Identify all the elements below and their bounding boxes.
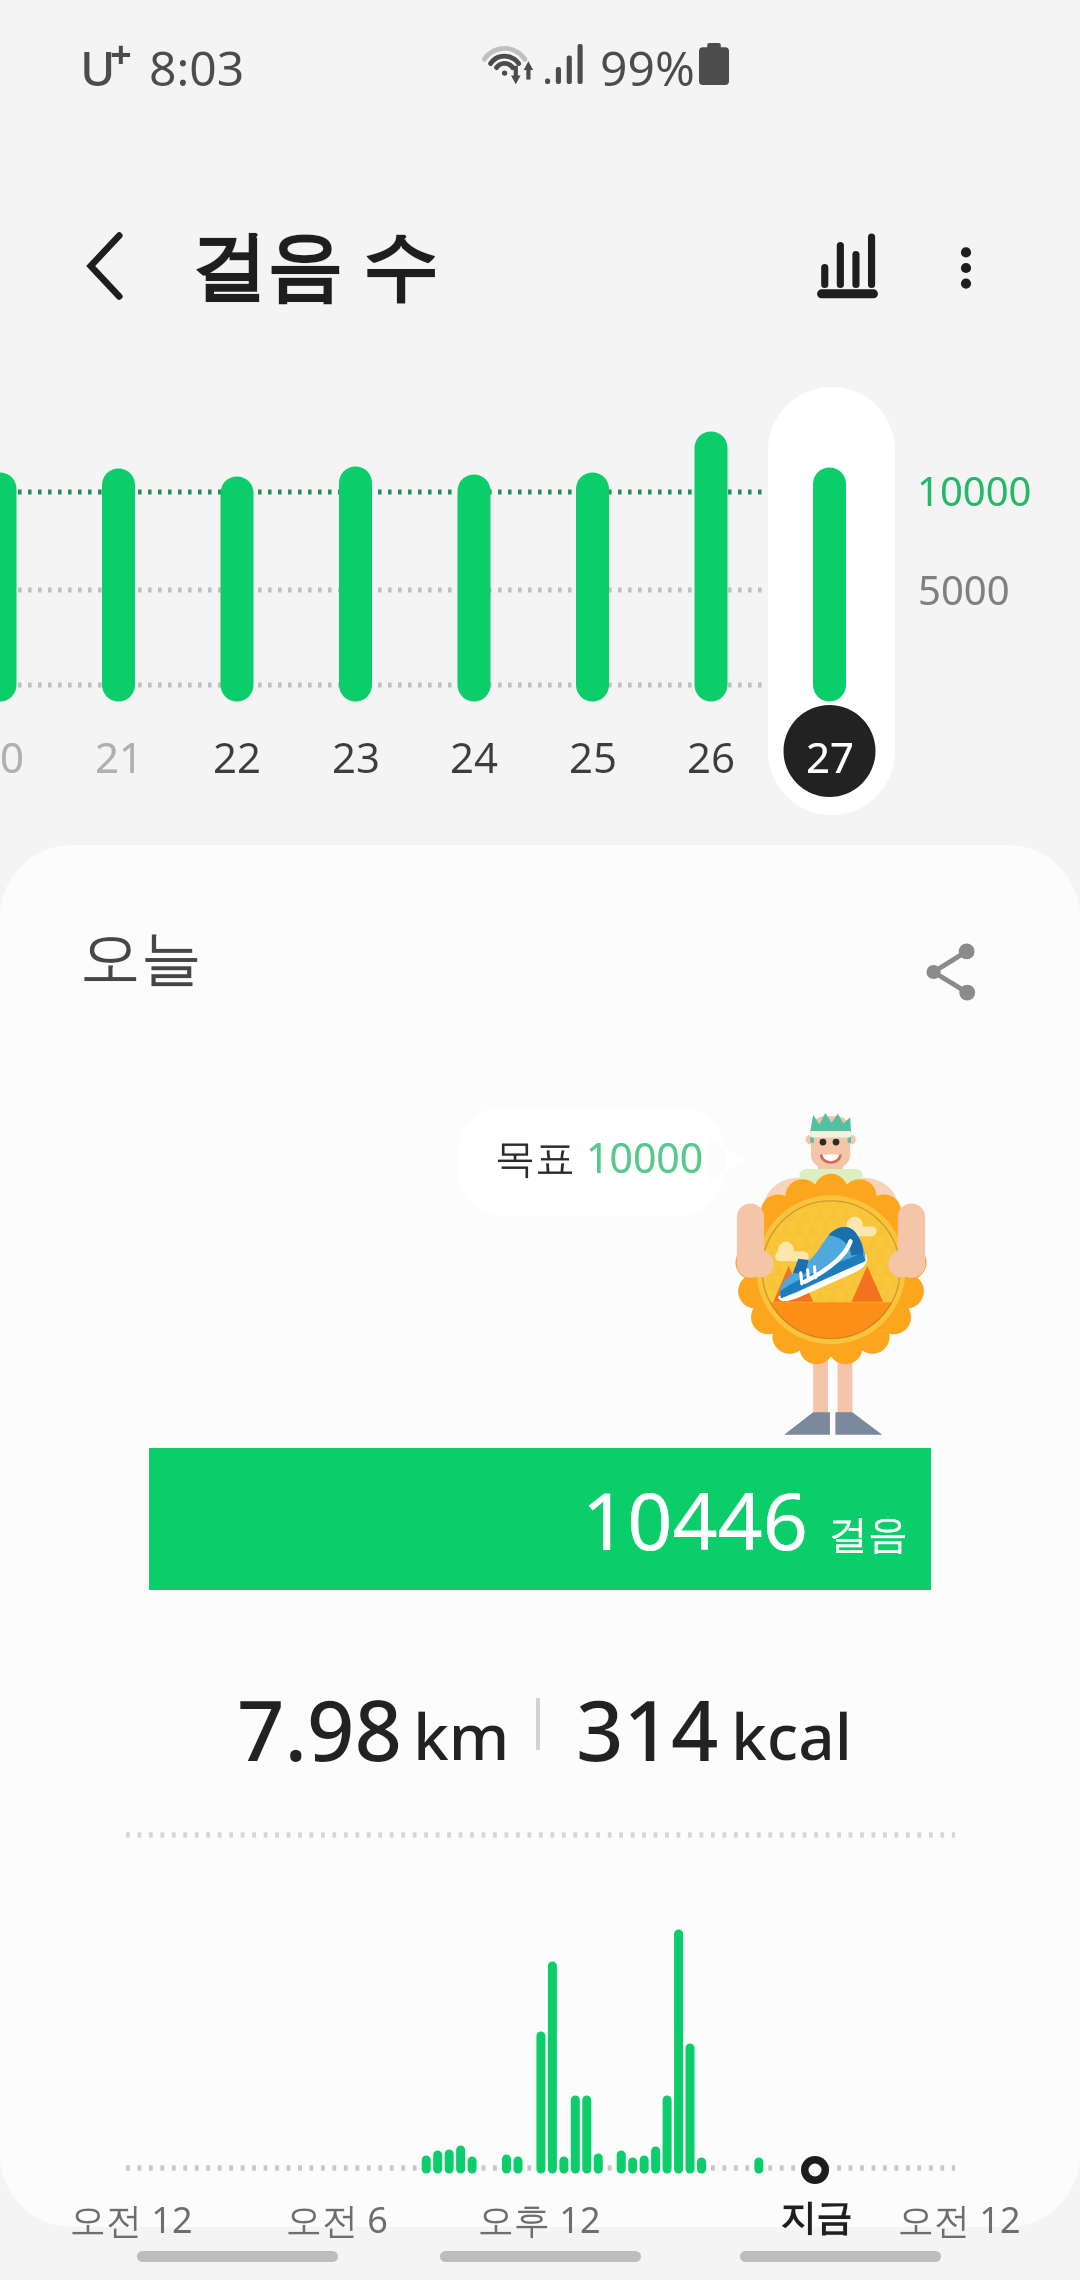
staticText: kcal bbox=[731, 1692, 853, 1779]
staticText: 오전 6 bbox=[286, 2195, 388, 2244]
staticText: 걸음 수 bbox=[190, 212, 438, 316]
button[interactable]: 24 bbox=[416, 390, 532, 790]
staticText: 오후 12 bbox=[478, 2195, 601, 2244]
staticText: 25 bbox=[569, 728, 618, 785]
button[interactable]: 20 bbox=[0, 390, 58, 790]
staticText: 21 bbox=[95, 728, 144, 785]
staticText: 오전 12 bbox=[70, 2195, 193, 2244]
staticText: 314 bbox=[576, 1672, 719, 1785]
staticText: 8:03 bbox=[149, 35, 245, 100]
button[interactable]: Navigation bbox=[137, 2251, 338, 2262]
button[interactable]: 27 bbox=[767, 387, 894, 815]
button[interactable]: Share bbox=[893, 912, 1013, 1032]
button[interactable]: 22 bbox=[179, 390, 295, 790]
staticText: 27 bbox=[806, 728, 855, 785]
staticText: 10000 bbox=[917, 463, 1032, 517]
button[interactable]: Back bbox=[51, 212, 159, 320]
staticText: 지금 bbox=[780, 2195, 852, 2240]
staticText: 22 bbox=[213, 728, 262, 785]
staticText: + bbox=[110, 27, 132, 79]
staticText: 10446 bbox=[582, 1466, 808, 1574]
button[interactable]: 26 bbox=[653, 390, 769, 790]
staticText: 10000 bbox=[586, 1129, 704, 1185]
staticText: U bbox=[80, 35, 116, 100]
button[interactable]: 10446 bbox=[149, 1448, 931, 1590]
button[interactable]: Navigation bbox=[740, 2251, 941, 2262]
button[interactable]: 21 bbox=[61, 390, 177, 790]
staticText: km bbox=[413, 1692, 510, 1779]
button[interactable]: Hourly step chart bbox=[110, 1825, 966, 2180]
staticText: 목표 bbox=[495, 1129, 586, 1184]
staticText: 걸음 bbox=[828, 1509, 908, 1559]
button[interactable]: 25 bbox=[535, 390, 651, 790]
button[interactable]: 23 bbox=[298, 390, 414, 790]
staticText: 20 bbox=[0, 728, 25, 785]
staticText: 7.98 bbox=[237, 1672, 403, 1785]
staticText: 99% bbox=[600, 35, 695, 100]
button[interactable]: More options bbox=[912, 214, 1020, 322]
staticText: 23 bbox=[332, 728, 381, 785]
staticText: 오전 12 bbox=[898, 2195, 1021, 2244]
staticText: 오늘 bbox=[80, 920, 202, 997]
staticText: 26 bbox=[687, 728, 736, 785]
button[interactable]: Navigation bbox=[440, 2251, 641, 2262]
staticText: 5000 bbox=[918, 562, 1010, 616]
staticText: 24 bbox=[450, 728, 499, 785]
button[interactable]: Chart view bbox=[793, 217, 901, 325]
